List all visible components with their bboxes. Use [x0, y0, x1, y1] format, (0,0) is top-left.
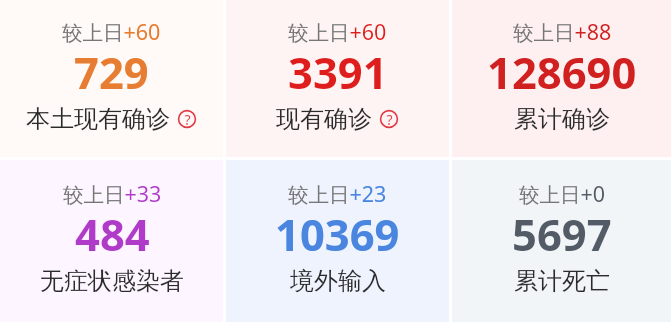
staticText: 本土现有确诊 — [26, 104, 170, 134]
staticText: 较上日+33 — [63, 179, 162, 208]
staticText: 128690 — [487, 42, 637, 101]
staticText: 10369 — [275, 204, 400, 263]
staticText: 729 — [74, 42, 149, 101]
staticText: ? — [184, 110, 191, 129]
button[interactable]: 较上日+60 — [226, 0, 449, 157]
staticText: 484 — [75, 204, 150, 263]
staticText: ? — [386, 110, 393, 129]
button[interactable]: 较上日+33 — [0, 160, 223, 322]
button[interactable]: 说明 — [379, 109, 399, 129]
button[interactable]: 较上日+88 — [452, 0, 671, 157]
button[interactable]: 较上日+60 — [0, 0, 223, 157]
button[interactable]: 说明 — [177, 109, 197, 129]
staticText: 较上日+88 — [513, 17, 612, 46]
staticText: 无症状感染者 — [40, 266, 184, 296]
staticText: 较上日+60 — [288, 17, 387, 46]
staticText: 较上日+60 — [62, 17, 161, 46]
staticText: 累计死亡 — [514, 266, 610, 296]
button[interactable]: 较上日+0 — [452, 160, 671, 322]
button[interactable]: 较上日+23 — [226, 160, 449, 322]
staticText: 累计确诊 — [514, 104, 610, 134]
staticText: 境外输入 — [290, 266, 386, 296]
staticText: 5697 — [512, 204, 612, 263]
staticText: 3391 — [288, 42, 388, 101]
staticText: 现有确诊 — [276, 104, 372, 134]
staticText: 较上日+23 — [288, 179, 387, 208]
staticText: 较上日+0 — [519, 179, 606, 208]
